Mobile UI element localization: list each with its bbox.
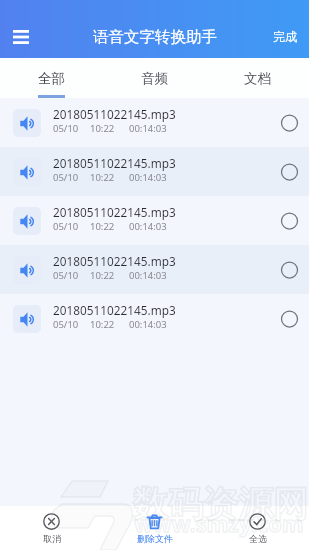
staticText: 10:22 [90,122,115,135]
button[interactable]: Menu [9,25,33,49]
button[interactable]: Select [272,302,306,336]
button[interactable]: Select [272,155,306,189]
button[interactable]: 20180511022145.mp3 [0,196,309,245]
staticText: 完成 [273,29,297,44]
staticText: 10:22 [90,171,115,184]
staticText: www.smzy.com [134,508,304,538]
staticText: 20180511022145.mp3 [53,155,176,171]
button[interactable]: 20180511022145.mp3 [0,294,309,343]
staticText: 10:22 [90,220,115,233]
staticText: 05/10 [53,122,79,135]
staticText: 数码资源网 [133,482,308,526]
button[interactable]: 文档 [206,58,309,98]
staticText: 全部 [38,70,65,87]
staticText: 00:14:03 [129,318,167,331]
staticText: 05/10 [53,171,79,184]
button[interactable]: 全部 [0,58,103,98]
staticText: 10:22 [90,318,115,331]
button[interactable]: 20180511022145.mp3 [0,147,309,196]
button[interactable]: 取消 [0,513,103,544]
staticText: 00:14:03 [129,122,167,135]
button[interactable]: 全选 [206,513,309,544]
staticText: 00:14:03 [129,171,167,184]
staticText: 取消 [43,533,61,544]
staticText: 20180511022145.mp3 [53,302,176,318]
staticText: 00:14:03 [129,269,167,282]
staticText: 10:22 [90,269,115,282]
staticText: 文档 [244,70,271,87]
button[interactable]: 音频 [103,58,206,98]
button[interactable]: Select [272,204,306,238]
button[interactable]: Select [272,106,306,140]
button[interactable]: 删除文件 [103,513,206,544]
staticText: 05/10 [53,318,79,331]
staticText: 05/10 [53,269,79,282]
staticText: 00:14:03 [129,220,167,233]
staticText: 05/10 [53,220,79,233]
button[interactable]: 完成 [261,21,309,52]
staticText: 20180511022145.mp3 [53,204,176,220]
staticText: 音频 [141,70,168,87]
staticText: 语音文字转换助手 [93,27,217,47]
button[interactable]: 20180511022145.mp3 [0,98,309,147]
staticText: 20180511022145.mp3 [53,253,176,269]
button[interactable]: Select [272,253,306,287]
staticText: 全选 [249,533,267,544]
staticText: 删除文件 [137,533,173,544]
button[interactable]: 20180511022145.mp3 [0,245,309,294]
staticText: 20180511022145.mp3 [53,106,176,122]
